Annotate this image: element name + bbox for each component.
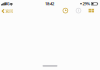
staticText: 18:42 (45, 1, 54, 6)
button[interactable]: Recents (61, 6, 70, 15)
button[interactable]: Layout options (87, 6, 95, 15)
staticText: 返回 (5, 9, 13, 13)
staticText: 4G (5, 1, 10, 6)
button[interactable]: Help (74, 6, 83, 15)
staticText: 29% (83, 1, 91, 6)
button[interactable]: 返回 (0, 6, 15, 16)
